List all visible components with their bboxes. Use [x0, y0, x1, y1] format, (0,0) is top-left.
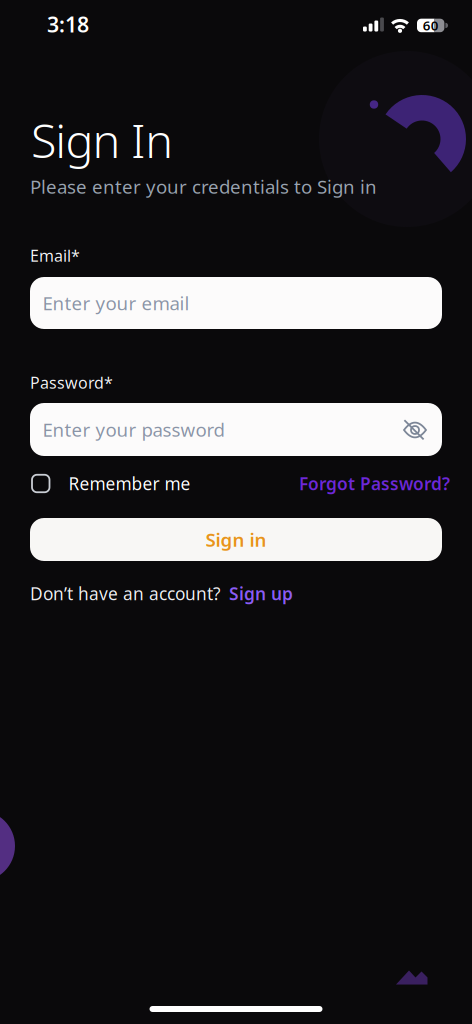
staticText: 3:18	[47, 10, 89, 38]
staticText: 60	[423, 17, 439, 34]
staticText: Forgot Password?	[299, 472, 450, 495]
button[interactable]: Sign in	[30, 518, 442, 561]
button[interactable]: Enter your password	[30, 403, 442, 456]
staticText: Please enter your credentials to Sign in	[30, 174, 377, 199]
button[interactable]: Sign up	[229, 582, 293, 605]
staticText: Email*	[30, 245, 80, 266]
staticText: Sign In	[31, 109, 173, 171]
staticText: Sign up	[229, 582, 293, 605]
staticText: Sign in	[205, 527, 266, 552]
staticText: Password*	[30, 372, 113, 393]
button[interactable]: Forgot Password?	[299, 472, 450, 495]
staticText: Don’t have an account?	[30, 582, 221, 605]
button[interactable]: Remember me	[32, 472, 190, 495]
staticText: Enter your password	[42, 417, 224, 442]
staticText: Remember me	[68, 472, 190, 495]
button[interactable]: Enter your email	[30, 277, 442, 329]
staticText: Enter your email	[42, 291, 189, 315]
